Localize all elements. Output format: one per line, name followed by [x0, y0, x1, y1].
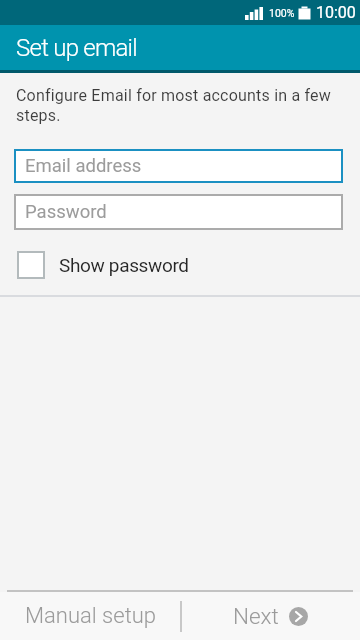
staticText: Email address	[25, 155, 142, 177]
button[interactable]: Next	[180, 592, 360, 640]
button[interactable]: Manual setup	[0, 592, 180, 640]
staticText: 10:00	[316, 3, 356, 22]
staticText: 100%	[269, 7, 295, 19]
button[interactable]: Show password	[17, 251, 189, 279]
staticText: Next	[233, 603, 279, 629]
staticText: Show password	[59, 254, 189, 276]
button[interactable]: Email address	[14, 149, 343, 183]
staticText: Password	[25, 201, 107, 223]
staticText: Set up email	[16, 34, 137, 62]
button[interactable]: Password	[14, 194, 343, 230]
staticText: Manual setup	[25, 603, 156, 629]
staticText: Configure Email for most accounts in a f…	[16, 86, 331, 125]
